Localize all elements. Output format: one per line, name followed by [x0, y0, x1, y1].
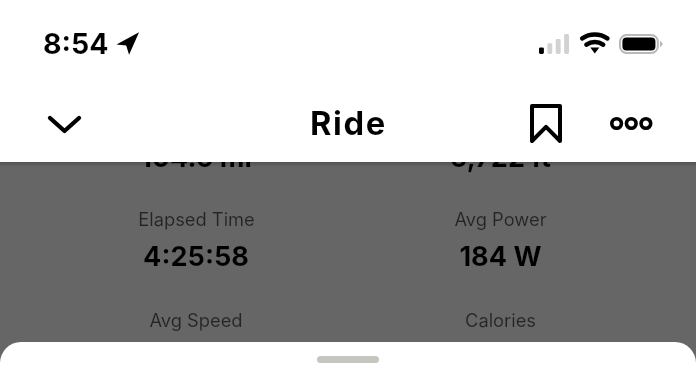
staticText: Avg Power [454, 208, 547, 230]
staticText: Elapsed Time [138, 208, 255, 230]
button[interactable]: Expand sheet [0, 342, 696, 385]
button[interactable]: Distance [44, 162, 348, 174]
staticText: 184 W [459, 240, 542, 273]
staticText: Avg Speed [149, 309, 243, 331]
button[interactable]: Elapsed Time [44, 208, 348, 273]
button[interactable]: Close [34, 94, 94, 154]
staticText: 5,722 ft [450, 162, 551, 174]
staticText: 104.6 mi [140, 162, 252, 174]
staticText: Ride [310, 103, 387, 143]
button[interactable]: Calories [348, 309, 652, 332]
button[interactable]: More options [601, 93, 661, 153]
staticText: Calories [465, 309, 536, 331]
staticText: 4:25:58 [143, 240, 249, 273]
staticText: 8:54 [43, 26, 109, 60]
button[interactable]: Save activity [516, 93, 576, 153]
button[interactable]: Elev Gain [348, 162, 652, 174]
button[interactable]: Avg Power [348, 208, 652, 273]
button[interactable]: Avg Speed [44, 309, 348, 332]
